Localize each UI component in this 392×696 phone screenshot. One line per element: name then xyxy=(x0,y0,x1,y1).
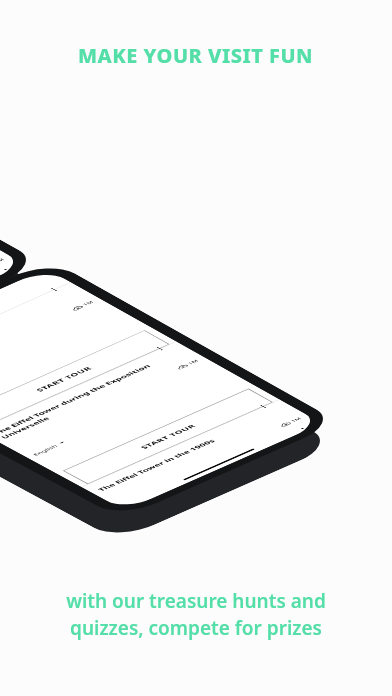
button[interactable]: START TOUR xyxy=(63,388,273,484)
staticText: Gustave Eiffel xyxy=(0,298,61,378)
staticText: MAKE YOUR VISIT FUN xyxy=(78,42,314,69)
staticText: The Eiffel Tower in the 1900s xyxy=(95,415,269,492)
staticText: 1M xyxy=(289,416,304,423)
button[interactable]: More options xyxy=(150,344,169,353)
staticText: START TOUR xyxy=(138,423,198,450)
button[interactable]: English xyxy=(31,440,67,457)
button[interactable]: START TOUR xyxy=(0,330,170,427)
staticText: The Eiffel Tower during the Exposition U… xyxy=(0,357,173,440)
staticText: English xyxy=(31,443,60,457)
staticText: START TOUR xyxy=(34,365,94,393)
button[interactable]: More options xyxy=(44,285,64,294)
staticText: 1M xyxy=(0,257,7,264)
button[interactable]: More options xyxy=(254,402,272,411)
staticText: with our treasure hunts and quizzes, com… xyxy=(66,588,326,641)
staticText: 1M xyxy=(186,359,201,366)
staticText: 1M xyxy=(81,300,96,307)
